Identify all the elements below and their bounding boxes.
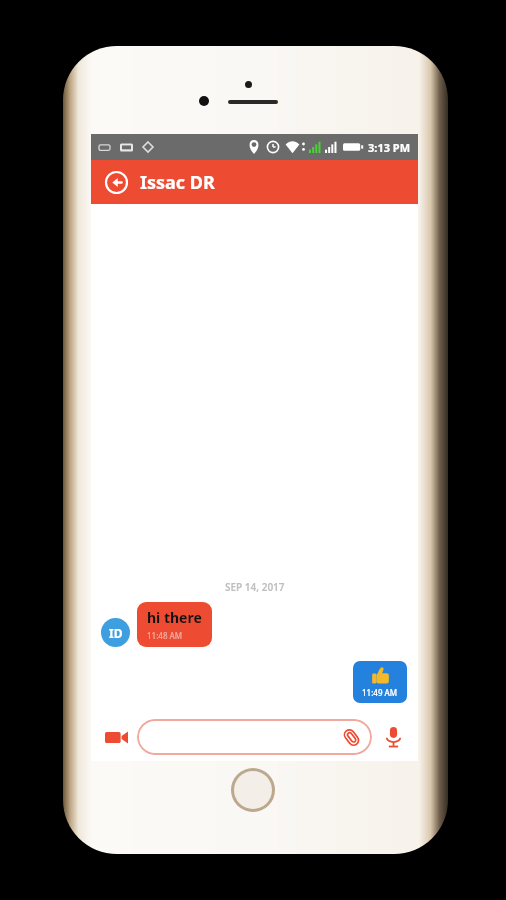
staticText: 11:48 AM [147, 630, 183, 641]
button[interactable]: 11:49 AM [353, 661, 407, 703]
button[interactable]: ID [101, 618, 130, 647]
staticText: SEP 14, 2017 [225, 580, 285, 594]
button[interactable]: Attach [137, 719, 372, 755]
staticText: 3:13 PM [368, 140, 411, 155]
staticText: Issac DR [140, 170, 215, 195]
staticText: ID [109, 625, 123, 641]
button[interactable]: Back [101, 167, 131, 197]
button[interactable]: Video call [99, 720, 133, 754]
button[interactable]: Record voice [376, 720, 410, 754]
button[interactable]: hi there [137, 602, 212, 647]
staticText: hi there [147, 608, 202, 627]
button[interactable]: Attach [339, 725, 363, 749]
staticText: 11:49 AM [362, 687, 398, 698]
